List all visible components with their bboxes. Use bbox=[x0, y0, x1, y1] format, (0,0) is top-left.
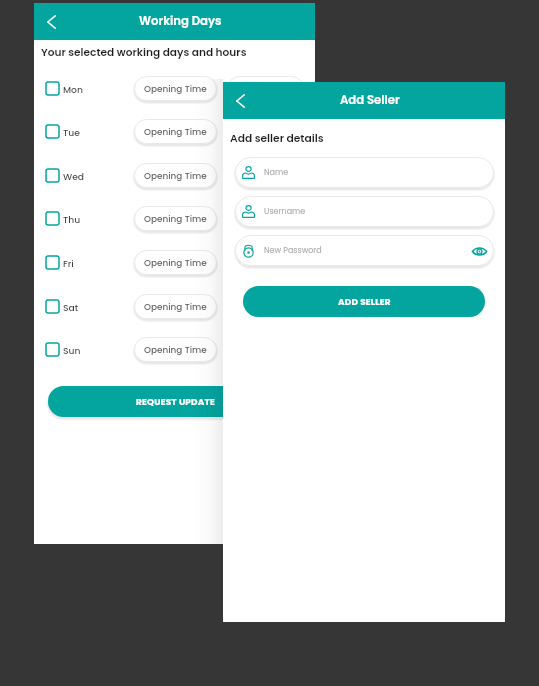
staticText: Opening Time bbox=[144, 344, 207, 356]
button[interactable]: Show password bbox=[470, 242, 488, 260]
staticText: Opening Time bbox=[144, 257, 207, 269]
staticText: Opening Time bbox=[144, 83, 207, 95]
button[interactable]: REQUEST UPDATE bbox=[48, 386, 302, 417]
staticText: Wed bbox=[63, 170, 85, 183]
button[interactable]: Name bbox=[235, 157, 494, 188]
button[interactable]: Closing Time bbox=[227, 294, 304, 319]
staticText: Working Days bbox=[139, 13, 222, 29]
staticText: Name bbox=[264, 167, 289, 178]
staticText: Sat bbox=[63, 301, 79, 314]
button[interactable]: ADD SELLER bbox=[243, 286, 485, 317]
staticText: Your selected working days and hours bbox=[41, 45, 247, 60]
staticText: ADD SELLER bbox=[338, 296, 391, 308]
button[interactable]: Opening Time bbox=[134, 250, 217, 275]
button[interactable]: Tue checkbox bbox=[46, 125, 59, 138]
button[interactable]: Sat checkbox bbox=[46, 300, 59, 313]
button[interactable]: New Password bbox=[235, 235, 494, 266]
button[interactable]: Closing Time bbox=[227, 76, 304, 101]
staticText: Mon bbox=[63, 83, 83, 96]
button[interactable]: Wed checkbox bbox=[46, 169, 59, 182]
button[interactable]: Username bbox=[235, 196, 494, 227]
button[interactable]: Closing Time bbox=[227, 119, 304, 144]
staticText: Closing Time bbox=[236, 257, 295, 269]
staticText: Closing Time bbox=[236, 301, 295, 313]
staticText: Fri bbox=[63, 257, 74, 270]
staticText: Closing Time bbox=[236, 213, 295, 225]
staticText: Add Seller bbox=[340, 92, 400, 108]
staticText: Username bbox=[264, 206, 306, 217]
staticText: Opening Time bbox=[144, 301, 207, 313]
button[interactable]: Closing Time bbox=[227, 163, 304, 188]
button[interactable]: Opening Time bbox=[134, 206, 217, 231]
button[interactable]: Back bbox=[37, 8, 65, 36]
button[interactable]: Opening Time bbox=[134, 163, 217, 188]
button[interactable]: Opening Time bbox=[134, 294, 217, 319]
staticText: New Password bbox=[264, 245, 322, 256]
button[interactable]: Opening Time bbox=[134, 119, 217, 144]
button[interactable]: Sun checkbox bbox=[46, 343, 59, 356]
button[interactable]: Opening Time bbox=[134, 337, 217, 362]
staticText: Opening Time bbox=[144, 213, 207, 225]
button[interactable]: Fri checkbox bbox=[46, 256, 59, 269]
staticText: Opening Time bbox=[144, 126, 207, 138]
button[interactable]: Opening Time bbox=[134, 76, 217, 101]
staticText: Thu bbox=[63, 213, 81, 226]
button[interactable]: Closing Time bbox=[227, 206, 304, 231]
staticText: Closing Time bbox=[236, 83, 295, 95]
staticText: Closing Time bbox=[236, 126, 295, 138]
staticText: Tue bbox=[63, 126, 80, 139]
button[interactable]: Mon checkbox bbox=[46, 82, 59, 95]
button[interactable]: Back bbox=[226, 87, 254, 115]
staticText: Opening Time bbox=[144, 170, 207, 182]
button[interactable]: Thu checkbox bbox=[46, 212, 59, 225]
staticText: Add seller details bbox=[230, 131, 324, 146]
staticText: REQUEST UPDATE bbox=[136, 396, 215, 408]
button[interactable]: Closing Time bbox=[227, 250, 304, 275]
staticText: Closing Time bbox=[236, 170, 295, 182]
staticText: Sun bbox=[63, 344, 81, 357]
